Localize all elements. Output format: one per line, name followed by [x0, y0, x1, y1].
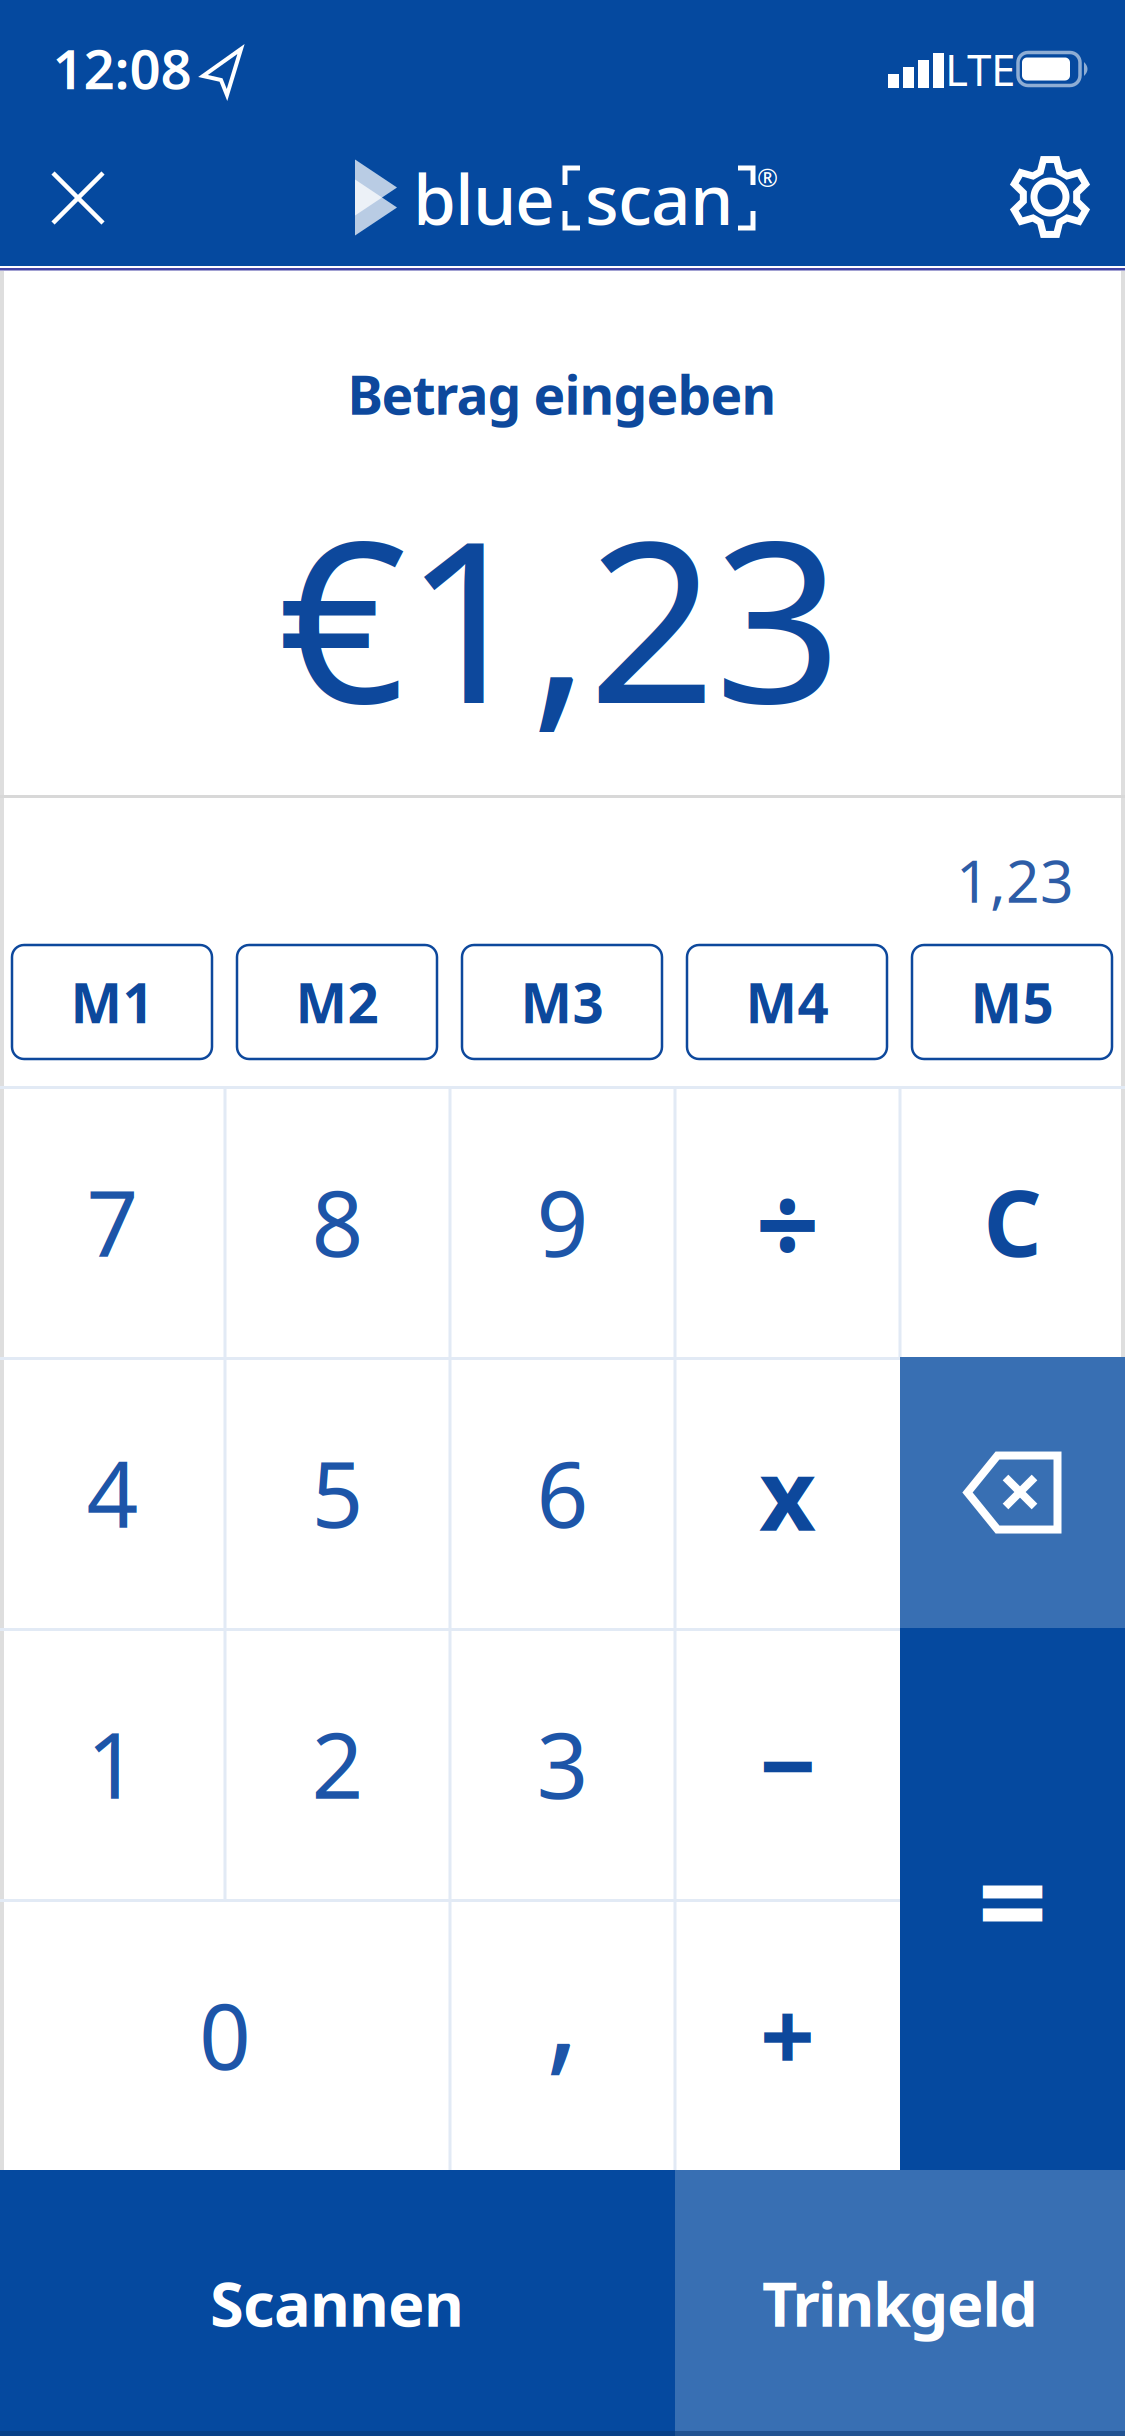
- staticText: C: [983, 1161, 1041, 1282]
- button[interactable]: x: [675, 1357, 900, 1628]
- staticText: x: [759, 1427, 816, 1558]
- staticText: 12:08: [52, 32, 191, 104]
- button[interactable]: M2: [237, 945, 437, 1059]
- button[interactable]: Scannen: [0, 2170, 675, 2436]
- staticText: =: [977, 1818, 1047, 1980]
- button[interactable]: −: [675, 1628, 900, 1899]
- button[interactable]: 2: [225, 1628, 450, 1899]
- button[interactable]: 0: [0, 1899, 450, 2170]
- button[interactable]: Löschen: [900, 1357, 1125, 1628]
- staticText: 0: [199, 1974, 251, 2095]
- button[interactable]: 5: [225, 1357, 450, 1628]
- button[interactable]: Schließen: [26, 146, 130, 250]
- button[interactable]: M4: [687, 945, 887, 1059]
- button[interactable]: M5: [912, 945, 1112, 1059]
- button[interactable]: 4: [0, 1357, 225, 1628]
- staticText: 6: [536, 1432, 588, 1553]
- staticText: 2: [311, 1703, 363, 1824]
- button[interactable]: +: [675, 1899, 900, 2170]
- staticText: ®: [757, 160, 778, 194]
- staticText: 7: [86, 1161, 138, 1282]
- button[interactable]: M3: [462, 945, 662, 1059]
- button[interactable]: ,: [450, 1873, 675, 2144]
- staticText: ÷: [755, 1147, 819, 1296]
- button[interactable]: =: [900, 1628, 1125, 2170]
- button[interactable]: 9: [450, 1086, 675, 1357]
- button[interactable]: 3: [450, 1628, 675, 1899]
- staticText: 1,23: [956, 841, 1074, 919]
- staticText: M1: [70, 966, 153, 1038]
- staticText: M5: [970, 966, 1053, 1038]
- button[interactable]: 6: [450, 1357, 675, 1628]
- button[interactable]: 1: [0, 1628, 225, 1899]
- button[interactable]: Trinkgeld: [675, 2170, 1125, 2436]
- staticText: Trinkgeld: [762, 2262, 1038, 2344]
- button[interactable]: Einstellungen: [998, 145, 1102, 249]
- staticText: blue: [413, 152, 555, 244]
- staticText: Betrag eingeben: [347, 359, 776, 429]
- button[interactable]: 8: [225, 1086, 450, 1357]
- button[interactable]: M1: [12, 945, 212, 1059]
- staticText: +: [760, 1971, 815, 2098]
- button[interactable]: 7: [0, 1086, 225, 1357]
- staticText: 9: [536, 1161, 588, 1282]
- button[interactable]: ÷: [675, 1086, 900, 1357]
- staticText: scan: [585, 152, 733, 244]
- staticText: Scannen: [210, 2262, 464, 2344]
- staticText: 3: [536, 1703, 588, 1824]
- staticText: 4: [86, 1432, 138, 1553]
- staticText: LTE: [945, 40, 1015, 98]
- staticText: M2: [295, 966, 378, 1038]
- staticText: ,: [545, 1923, 579, 2093]
- staticText: 1: [86, 1703, 138, 1824]
- staticText: €1,23: [278, 467, 842, 765]
- staticText: 8: [311, 1161, 363, 1282]
- staticText: −: [759, 1698, 816, 1829]
- staticText: M4: [745, 966, 828, 1038]
- button[interactable]: C: [900, 1086, 1125, 1357]
- staticText: M3: [520, 966, 603, 1038]
- staticText: 5: [311, 1432, 363, 1553]
